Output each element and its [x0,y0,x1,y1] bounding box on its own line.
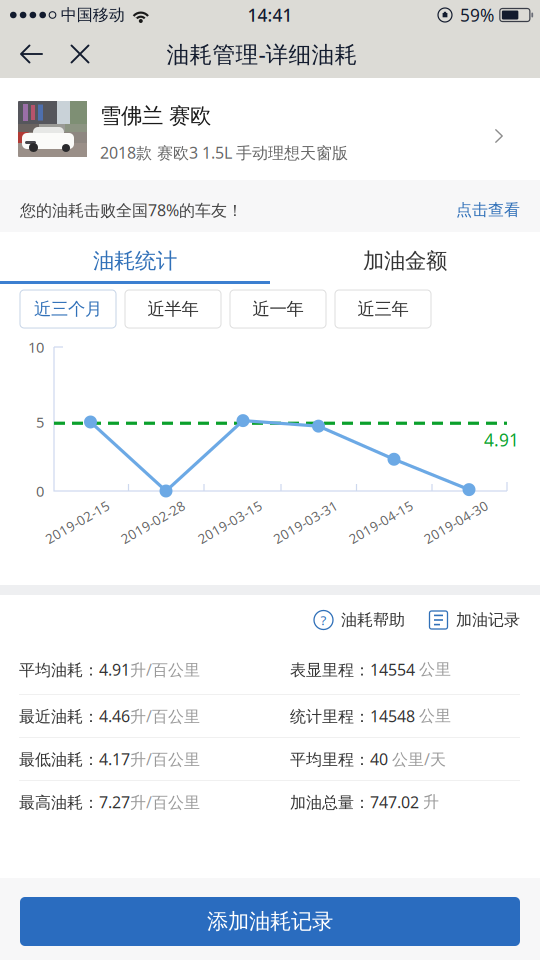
staticText: 统计里程：14548 [290,705,419,727]
staticText: 5 [36,412,44,432]
staticText: 雪佛兰 赛欧 [100,103,211,129]
staticText: 升/百公里 [130,659,200,680]
staticText: 加油记录 [456,610,520,630]
staticText: 59% [460,3,494,26]
staticText: 2018款 赛欧3 1.5L 手动理想天窗版 [100,142,348,163]
button[interactable]: 雪佛兰 赛欧 [0,78,540,180]
staticText: 2019-02-15 [41,513,113,531]
staticText: 近三个月 [34,298,102,320]
button[interactable]: 加油记录 [429,610,520,630]
staticText: 公里/天 [392,748,446,770]
staticText: 升/百公里 [130,791,200,813]
staticText: 2019-04-30 [420,513,492,531]
staticText: 油耗帮助 [341,610,405,630]
staticText: 升/百公里 [130,748,200,770]
staticText: 2019-03-31 [269,513,341,531]
button[interactable]: 近三年 [335,290,431,328]
staticText: 平均油耗：4.91 [19,659,130,680]
button[interactable]: 添加油耗记录 [20,897,520,946]
staticText: ? [320,611,326,629]
staticText: 0 [36,481,44,501]
button[interactable]: 点击查看 [456,200,520,220]
button[interactable]: 加油金额 [270,235,540,287]
staticText: 近一年 [252,298,303,320]
button[interactable]: 返回 [7,30,56,78]
button[interactable]: 近三个月 [20,290,116,328]
button[interactable]: 油耗统计 [0,235,270,287]
staticText: 2019-03-15 [194,513,266,531]
button[interactable]: 近一年 [230,290,326,328]
staticText: 14:41 [247,3,292,26]
staticText: 油耗统计 [93,248,177,274]
staticText: 最高油耗：7.27 [19,791,130,813]
button[interactable]: 近半年 [125,290,221,328]
staticText: 最近油耗：4.46 [19,705,130,727]
staticText: 近三年 [357,298,408,320]
staticText: 中国移动 [61,5,125,25]
staticText: 公里 [419,706,451,726]
staticText: 2019-02-28 [117,513,189,531]
staticText: 油耗管理-详细油耗 [166,39,357,69]
staticText: 最低油耗：4.17 [19,748,130,770]
staticText: 10 [28,337,44,357]
button[interactable]: 关闭 [56,30,104,78]
staticText: 升 [423,792,439,812]
staticText: 添加油耗记录 [207,908,333,935]
staticText: 表显里程：14554 [290,659,419,680]
staticText: 4.91 [484,428,519,451]
staticText: 近半年 [147,298,198,320]
staticText: 加油金额 [363,248,447,274]
staticText: 您的油耗击败全国78%的车友！ [20,199,243,221]
staticText: 加油总量：747.02 [290,791,423,813]
staticText: 升/百公里 [130,705,200,727]
staticText: 点击查看 [456,200,520,220]
staticText: 公里 [419,660,451,679]
staticText: 平均里程：40 [290,748,392,770]
button[interactable]: ? [314,610,405,630]
staticText: 2019-04-15 [345,513,417,531]
